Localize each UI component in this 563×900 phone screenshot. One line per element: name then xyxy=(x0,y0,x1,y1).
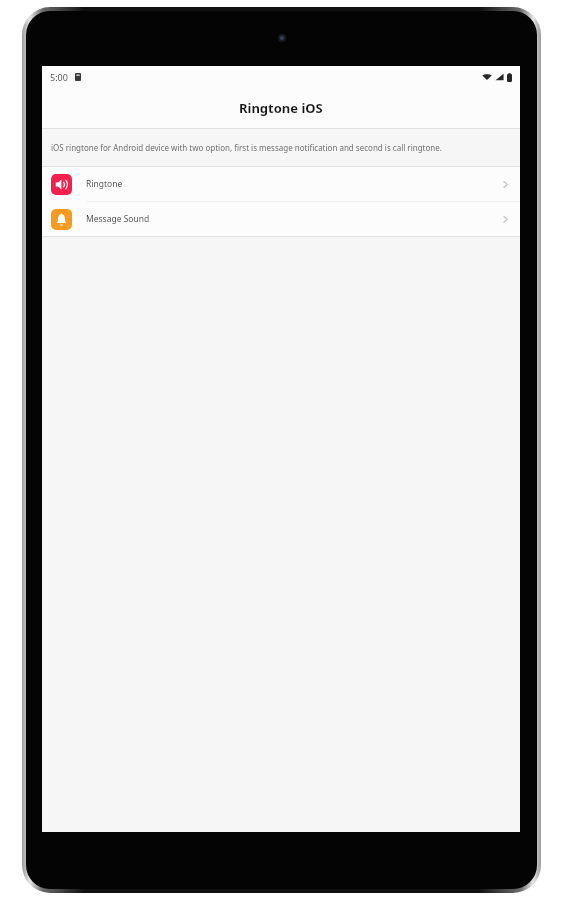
staticText: Message Sound xyxy=(86,213,150,225)
staticText: 5:00 xyxy=(50,71,68,83)
button[interactable]: Message Sound xyxy=(42,202,520,236)
staticText: Ringtone xyxy=(86,178,123,190)
staticText: Ringtone iOS xyxy=(239,99,323,117)
button[interactable]: Ringtone xyxy=(42,167,520,201)
other: Open Ringtone xyxy=(500,179,511,190)
other: Open Message Sound xyxy=(500,214,511,225)
staticText: iOS ringtone for Android device with two… xyxy=(51,142,442,153)
